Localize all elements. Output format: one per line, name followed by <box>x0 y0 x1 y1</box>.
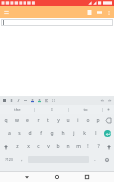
button[interactable]: ? <box>93 141 103 152</box>
staticText: ? <box>97 143 100 150</box>
staticText: h <box>61 130 65 137</box>
staticText: a <box>8 130 11 137</box>
button[interactable]: New document <box>84 7 94 17</box>
button[interactable]: ! <box>83 141 93 152</box>
button[interactable]: l <box>90 128 101 139</box>
button[interactable]: u <box>63 115 73 126</box>
button[interactable]: Recent apps <box>77 171 97 182</box>
button[interactable]: Redo <box>106 97 113 104</box>
staticText: t <box>47 117 49 124</box>
staticText: u <box>66 117 70 124</box>
button[interactable]: t <box>43 115 53 126</box>
staticText: i <box>77 117 79 124</box>
button[interactable]: I <box>35 105 68 114</box>
button[interactable]: b <box>53 141 63 152</box>
button[interactable]: v <box>43 141 53 152</box>
staticText: e <box>26 117 29 124</box>
button[interactable]: q <box>0 115 11 126</box>
button[interactable]: Home <box>47 171 67 182</box>
button[interactable]: Shift <box>103 141 114 152</box>
button[interactable]: Align <box>43 97 50 104</box>
button[interactable]: the <box>0 105 34 114</box>
button[interactable]: s <box>14 128 24 139</box>
button[interactable]: h <box>57 128 68 139</box>
button[interactable]: e <box>22 115 33 126</box>
staticText: g <box>50 130 54 137</box>
button[interactable]: o <box>83 115 93 126</box>
button[interactable]: Enter <box>101 128 114 139</box>
staticText: m <box>76 143 81 150</box>
button[interactable]: Shift <box>0 141 12 152</box>
staticText: n <box>66 143 70 150</box>
button[interactable]: More options <box>104 8 113 17</box>
button[interactable]: p <box>93 115 103 126</box>
staticText: v <box>47 143 50 150</box>
button[interactable]: List <box>50 97 57 104</box>
button[interactable]: Undo <box>99 97 106 104</box>
staticText: c <box>37 143 40 150</box>
button[interactable]: Emoji <box>100 154 114 165</box>
staticText: r <box>37 117 40 124</box>
staticText: to <box>83 107 88 113</box>
button[interactable]: to <box>69 105 102 114</box>
staticText: the <box>14 107 21 113</box>
staticText: p <box>96 117 100 124</box>
button[interactable]: Navigate up <box>2 8 11 17</box>
button[interactable]: Italic <box>15 97 22 104</box>
staticText: o <box>86 117 90 124</box>
staticText: z <box>16 143 19 150</box>
button[interactable]: j <box>68 128 79 139</box>
button[interactable]: Highlight <box>36 97 43 104</box>
button[interactable]: Save <box>94 7 104 17</box>
button[interactable]: i <box>73 115 83 126</box>
button[interactable]: x <box>23 141 33 152</box>
button[interactable]: , <box>17 154 27 165</box>
staticText: q <box>4 117 8 124</box>
staticText: ?123 <box>5 157 13 162</box>
staticText: s <box>18 130 21 137</box>
button[interactable]: Style <box>1 97 8 104</box>
staticText: w <box>15 117 19 124</box>
staticText: f <box>40 130 42 137</box>
staticText: b <box>56 143 60 150</box>
staticText: k <box>83 130 86 137</box>
button[interactable]: . <box>90 154 100 165</box>
staticText: ! <box>87 143 89 150</box>
staticText: . <box>94 156 96 163</box>
button[interactable]: Bold <box>8 97 15 104</box>
button[interactable]: Back <box>17 171 37 182</box>
staticText: I <box>51 107 53 113</box>
staticText: j <box>73 130 75 137</box>
button[interactable]: c <box>33 141 43 152</box>
button[interactable]: y <box>53 115 63 126</box>
button[interactable]: Strikethrough <box>22 97 29 104</box>
button[interactable]: Keyboard settings <box>103 105 114 114</box>
button[interactable]: m <box>73 141 83 152</box>
button[interactable]: f <box>35 128 46 139</box>
staticText: d <box>28 130 32 137</box>
button[interactable]: n <box>63 141 73 152</box>
button[interactable]: Underline <box>29 97 36 104</box>
staticText: l <box>95 130 97 137</box>
button[interactable]: d <box>24 128 35 139</box>
staticText: x <box>27 143 30 150</box>
button[interactable] <box>1 19 113 26</box>
button[interactable]: g <box>46 128 57 139</box>
button[interactable]: Backspace <box>103 115 114 126</box>
button[interactable]: z <box>12 141 23 152</box>
button[interactable]: w <box>11 115 22 126</box>
button[interactable]: ?123 <box>0 154 17 165</box>
staticText: y <box>57 117 60 124</box>
staticText: , <box>21 156 23 163</box>
button[interactable]: r <box>33 115 43 126</box>
button[interactable]: k <box>79 128 90 139</box>
button[interactable]: a <box>4 128 14 139</box>
